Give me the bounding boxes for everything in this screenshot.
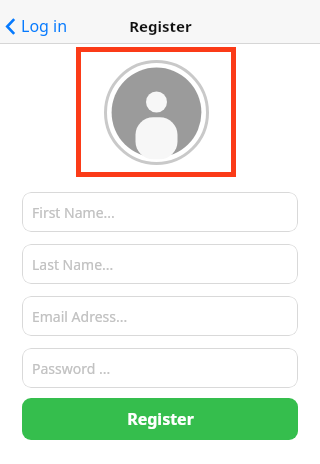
- button[interactable]: First Name...: [22, 192, 298, 232]
- staticText: Last Name...: [32, 255, 114, 274]
- staticText: Log in: [21, 15, 68, 37]
- button[interactable]: Log in: [0, 11, 78, 41]
- staticText: Register: [127, 408, 194, 430]
- staticText: Email Adress...: [32, 307, 128, 326]
- button[interactable]: Password ...: [22, 348, 298, 388]
- button[interactable]: Last Name...: [22, 244, 298, 284]
- staticText: Password ...: [32, 359, 111, 378]
- staticText: First Name...: [32, 203, 115, 222]
- button[interactable]: Email Adress...: [22, 296, 298, 336]
- staticText: Register: [129, 16, 192, 36]
- button[interactable]: Register: [22, 398, 298, 440]
- button[interactable]: Profile photo: [76, 47, 236, 177]
